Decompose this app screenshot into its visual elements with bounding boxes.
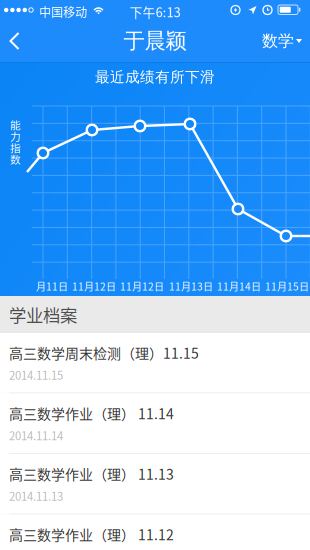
button[interactable]: 高三数学作业（理） 11.13 <box>0 454 310 513</box>
staticText: 月11日 <box>36 279 68 293</box>
button[interactable]: 返回 <box>0 23 34 59</box>
staticText: 11月14日 <box>217 279 261 293</box>
staticText: 2014.11.13 <box>9 488 63 504</box>
staticText: 11月13日 <box>169 279 213 293</box>
staticText: 数学 <box>262 31 294 51</box>
button[interactable]: 高三数学周末检测（理）11.15 <box>0 333 310 392</box>
staticText: 数 <box>10 151 21 167</box>
staticText: 指 <box>10 140 21 155</box>
button[interactable]: 数学 <box>252 21 310 61</box>
staticText: 2014.11.15 <box>9 367 63 383</box>
staticText: 高三数学作业（理） 11.14 <box>9 403 174 423</box>
staticText: 力 <box>10 128 21 144</box>
button[interactable]: 高三数学作业（理） 11.14 <box>0 393 310 453</box>
staticText: 11月12日 <box>120 279 164 293</box>
staticText: 于晨颖 <box>123 28 186 54</box>
staticText: 高三数学作业（理） 11.12 <box>9 524 174 544</box>
staticText: 学业档案 <box>9 302 77 327</box>
button[interactable]: 高三数学作业（理） 11.12 <box>0 514 310 550</box>
staticText: 11月12日 <box>72 279 116 293</box>
staticText: 能 <box>10 117 21 132</box>
staticText: 高三数学周末检测（理）11.15 <box>9 342 199 363</box>
staticText: 中国移动 <box>39 3 87 20</box>
staticText: 最近成绩有所下滑 <box>95 68 215 86</box>
staticText: 11月15日 <box>265 279 309 293</box>
staticText: 2014.11.14 <box>9 427 63 444</box>
staticText: 下午6:13 <box>129 2 180 21</box>
staticText: 高三数学作业（理） 11.13 <box>9 463 174 484</box>
